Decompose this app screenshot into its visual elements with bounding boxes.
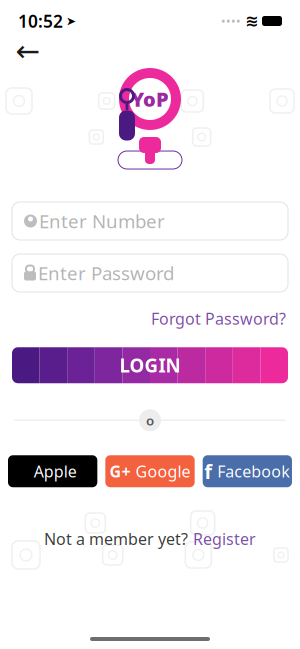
staticText: Enter Number <box>39 209 165 233</box>
staticText: ≋ <box>245 12 258 30</box>
staticText: LOGIN <box>119 353 180 378</box>
button[interactable]: Forgot Password? <box>151 304 286 333</box>
staticText: Register <box>193 528 256 549</box>
button[interactable]: G+ <box>105 455 195 487</box>
staticText: Apple <box>34 461 77 482</box>
button[interactable]: Back <box>10 36 46 66</box>
staticText: ➤ <box>66 14 76 28</box>
button[interactable]: f <box>203 455 292 487</box>
staticText: Facebook <box>217 461 290 482</box>
staticText: Forgot Password? <box>151 308 286 329</box>
staticText: •••• <box>221 13 241 29</box>
staticText: G+ <box>109 461 130 482</box>
staticText: Google <box>135 461 190 482</box>
staticText: o <box>146 411 154 429</box>
staticText: ← <box>15 34 40 68</box>
staticText: YoP <box>131 86 169 112</box>
staticText: Enter Password <box>38 261 174 285</box>
staticText: Not a member yet? <box>44 528 188 549</box>
staticText: 10:52 <box>18 9 63 32</box>
staticText: f <box>204 458 212 485</box>
button[interactable]: Register <box>193 525 256 552</box>
button[interactable]: LOGIN <box>12 347 288 383</box>
button[interactable] <box>8 455 97 487</box>
